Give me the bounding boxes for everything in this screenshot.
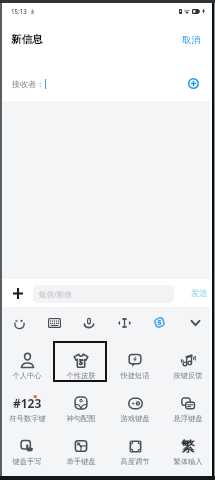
button[interactable]: Sogou input method (144, 307, 174, 338)
staticText: 游戏键盘 (120, 414, 150, 423)
button[interactable]: Emoji (4, 307, 34, 338)
staticText: 快捷短语 (120, 371, 150, 380)
button[interactable]: Add attachment (7, 283, 28, 304)
staticText: 高度调节 (120, 457, 150, 466)
staticText: #123 (13, 395, 42, 411)
staticText: 接收者： (12, 79, 44, 89)
button[interactable]: Hide keyboard (180, 307, 210, 338)
button[interactable]: 悬浮键盘 (161, 381, 215, 424)
staticText: 键盘手写 (12, 457, 42, 466)
staticText: 符号数字键 (9, 414, 46, 423)
staticText: 15:13 (11, 7, 27, 15)
button[interactable]: Move cursor (109, 307, 139, 338)
staticText: 悬浮键盘 (173, 414, 203, 423)
staticText: 取消 (182, 34, 201, 46)
button[interactable]: Keyboard (39, 307, 69, 338)
button[interactable]: 个性皮肤 (54, 338, 108, 381)
button[interactable]: 短信/彩信 (33, 285, 174, 303)
staticText: 神句配图 (66, 414, 96, 423)
button[interactable]: 游戏键盘 (108, 381, 162, 424)
staticText: 发送 (191, 288, 208, 299)
staticText: 单手键盘 (66, 457, 96, 466)
button[interactable]: 个人中心 (0, 338, 54, 381)
button[interactable]: 发送 (179, 282, 215, 305)
button[interactable]: #123 (0, 381, 54, 424)
staticText: 繁 (181, 438, 195, 454)
button[interactable]: Voice input (74, 307, 104, 338)
button[interactable]: 按键反馈 (161, 338, 215, 381)
button[interactable]: 键盘手写 (0, 424, 54, 467)
button[interactable]: Add recipient (187, 77, 200, 90)
button[interactable]: 单手键盘 (54, 424, 108, 467)
staticText: 繁体输入 (173, 457, 203, 466)
button[interactable]: 繁 (161, 424, 215, 467)
button[interactable]: 快捷短语 (108, 338, 162, 381)
button[interactable]: 高度调节 (108, 424, 162, 467)
staticText: 按键反馈 (173, 371, 203, 380)
staticText: 短信/彩信 (39, 289, 72, 299)
button[interactable]: 取消 (170, 28, 215, 52)
staticText: 个人中心 (12, 371, 42, 380)
button[interactable]: 神句配图 (54, 381, 108, 424)
staticText: 新信息 (11, 33, 43, 46)
staticText: 个性皮肤 (66, 371, 96, 380)
